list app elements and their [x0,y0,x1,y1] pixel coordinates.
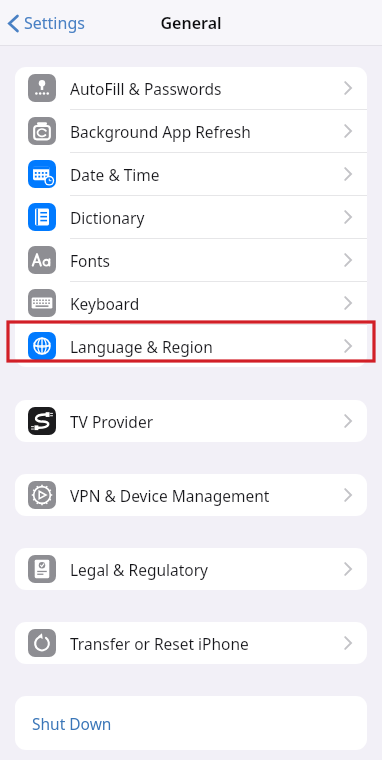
staticText: TV Provider [70,411,344,432]
button[interactable]: Legal & Regulatory [15,548,367,590]
button[interactable]: Settings [0,8,93,38]
button[interactable]: Background App Refresh [15,110,367,152]
staticText: Language & Region [70,336,344,357]
staticText: Dictionary [70,207,344,228]
staticText: Keyboard [70,293,344,314]
button[interactable]: Fonts [15,239,367,281]
staticText: Fonts [70,250,344,271]
staticText: Settings [24,12,85,34]
staticText: Transfer or Reset iPhone [70,633,344,654]
button[interactable]: VPN & Device Management [15,474,367,516]
button[interactable]: TV Provider [15,400,367,442]
button[interactable]: AutoFill & Passwords [15,67,367,109]
button[interactable]: Transfer or Reset iPhone [15,622,367,664]
staticText: Date & Time [70,164,344,185]
button[interactable]: Keyboard [15,282,367,324]
staticText: Shut Down [32,713,112,734]
button[interactable]: Date & Time [15,153,367,195]
staticText: VPN & Device Management [70,485,344,506]
button[interactable]: Language & Region [15,325,367,367]
staticText: General [160,12,222,34]
staticText: Background App Refresh [70,121,344,142]
staticText: AutoFill & Passwords [70,78,344,99]
button[interactable]: Shut Down [15,696,367,750]
button[interactable]: Dictionary [15,196,367,238]
staticText: Legal & Regulatory [70,559,344,580]
